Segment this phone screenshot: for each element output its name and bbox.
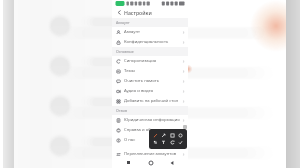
button[interactable]: Свернуть панель <box>183 125 187 129</box>
staticText: Настройки <box>124 9 152 16</box>
button[interactable]: Инструмент 7 <box>169 139 176 146</box>
staticText: Очистить память <box>124 78 182 84</box>
staticText: Аудио и видео <box>124 88 182 94</box>
button[interactable]: Последние приложения <box>124 158 133 167</box>
staticText: Аккаунт <box>124 29 182 35</box>
staticText: Юридическая информация и политика <box>124 117 182 123</box>
button[interactable]: Темы <box>112 66 188 76</box>
button[interactable]: Юридическая информация и политика <box>112 115 188 125</box>
button[interactable]: Инструмент 5 <box>152 139 159 146</box>
staticText: Основные <box>116 49 134 54</box>
staticText: Аккаунт <box>116 20 130 25</box>
button[interactable]: Главный экран <box>146 158 155 167</box>
button[interactable]: Инструмент 2 <box>160 132 167 139</box>
staticText: О нас <box>124 137 182 143</box>
button[interactable]: Переключение аккаунтов <box>112 149 188 159</box>
button[interactable]: Синхронизация <box>112 56 188 66</box>
button[interactable]: Инструмент 6 <box>160 139 167 146</box>
button[interactable]: Назад <box>167 158 176 167</box>
staticText: Синхронизация <box>124 58 182 64</box>
staticText: Отзыв <box>116 108 127 113</box>
staticText: Добавить на рабочий стол <box>124 98 182 104</box>
button[interactable]: Инструмент 3 <box>169 132 176 139</box>
button[interactable]: Инструмент 8 <box>177 139 184 146</box>
staticText: Справка и обратная связь <box>124 127 182 133</box>
button[interactable]: Добавить на рабочий стол <box>112 96 188 106</box>
staticText: Конфиденциальность <box>124 39 182 45</box>
staticText: Переключение аккаунтов <box>124 151 182 157</box>
button[interactable]: Аудио и видео <box>112 86 188 96</box>
button[interactable]: Конфиденциальность <box>112 37 188 47</box>
button[interactable]: Назад <box>115 8 124 17</box>
button[interactable]: Очистить память <box>112 76 188 86</box>
button[interactable]: Справка и обратная связь <box>112 125 188 135</box>
button[interactable]: Аккаунт <box>112 27 188 37</box>
button[interactable]: О нас <box>112 135 188 145</box>
staticText: Темы <box>124 68 182 74</box>
button[interactable]: Инструмент 1 <box>152 132 159 139</box>
button[interactable]: Инструмент 4 <box>177 132 184 139</box>
